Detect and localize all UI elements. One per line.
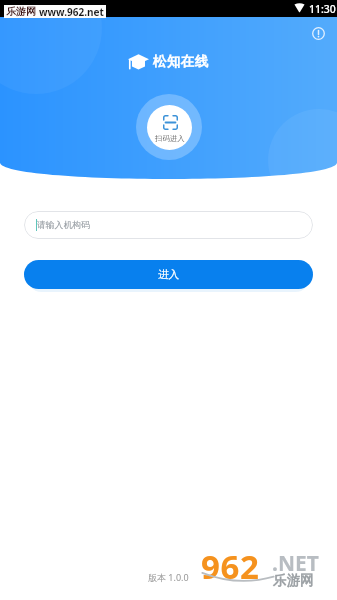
button[interactable]: Info	[311, 26, 326, 41]
staticText: 松知在线	[153, 53, 209, 70]
staticText: .NET	[272, 549, 319, 578]
staticText: 扫码进入	[155, 134, 185, 143]
button[interactable]: 进入	[24, 260, 313, 289]
staticText: www.962.net	[39, 5, 104, 18]
button[interactable]: Scan to enter	[136, 94, 202, 160]
staticText: 版本 1.0.0	[148, 571, 189, 583]
button[interactable]: 请输入机构码	[24, 211, 313, 239]
staticText: 请输入机构码	[37, 220, 90, 231]
staticText: 11:30	[309, 2, 336, 16]
staticText: 乐游网	[273, 572, 314, 589]
staticText: 进入	[158, 268, 180, 281]
staticText: 962	[201, 544, 260, 589]
staticText: 乐游网	[6, 5, 36, 18]
